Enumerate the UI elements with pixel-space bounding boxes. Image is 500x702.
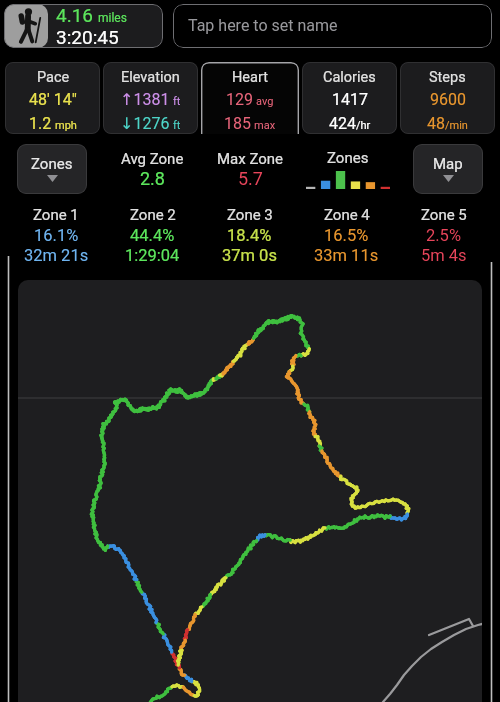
button[interactable]: Map [413,144,483,194]
staticText: 129 [226,91,253,109]
staticText: ↓1276 [120,115,170,133]
staticText: Zone 4 [324,207,370,224]
staticText: Calories [323,69,376,85]
staticText: 16.1% [34,226,79,244]
button[interactable]: Route map [18,280,482,702]
staticText: Elevation [121,69,180,85]
staticText: Zone 2 [130,207,176,224]
staticText: 3:20:45 [56,27,119,48]
staticText: 2.8 [140,169,165,189]
staticText: mph [55,119,77,131]
button[interactable]: Activity type: hiking [4,4,163,48]
button[interactable]: Pace [5,62,100,134]
staticText: ↑1381 [120,91,170,109]
staticText: /min [445,119,468,131]
staticText: Heart [232,69,268,85]
staticText: Map [433,156,463,173]
staticText: Pace [37,69,70,85]
staticText: 424 [329,115,356,133]
staticText: 37m 0s [222,246,277,264]
staticText: Zone 3 [227,207,273,224]
staticText: 5m 4s [421,246,467,264]
staticText: 185 [224,115,251,133]
staticText: 18.4% [227,226,272,244]
staticText: ft [173,119,181,131]
staticText: 9600 [430,91,466,109]
staticText: Avg Zone [121,151,184,168]
button[interactable]: Zone 4 [298,207,395,264]
button[interactable]: Zone 5 [395,207,492,264]
staticText: Zones [327,150,369,167]
staticText: miles [98,11,127,24]
staticText: avg [256,95,274,107]
staticText: Zone 1 [33,207,79,224]
button[interactable]: Elevation [103,62,198,134]
staticText: 48 [427,115,445,133]
staticText: Zones [31,156,73,173]
staticText: 32m 21s [24,246,89,264]
staticText: Zone 5 [421,207,467,224]
staticText: 1:29:04 [125,246,180,264]
staticText: /hr [356,119,371,131]
staticText: 48' 14" [29,91,77,109]
button[interactable]: Steps [400,62,495,134]
staticText: 33m 11s [314,246,379,264]
button[interactable]: Tap here to set name [173,4,492,48]
staticText: 4.16 [56,5,94,26]
other: Activity type: hiking [4,4,48,48]
button[interactable]: Zone 3 [201,207,298,264]
staticText: 44.4% [130,226,175,244]
staticText: Tap here to set name [188,17,338,35]
button[interactable]: Calories [302,62,397,134]
staticText: 5.7 [238,169,263,189]
staticText: Max Zone [217,151,284,168]
staticText: 2.5% [426,226,461,244]
staticText: 16.5% [324,226,369,244]
button[interactable]: Zones [299,150,397,189]
button[interactable]: Zones [17,144,87,194]
staticText: ft [173,95,181,107]
staticText: Steps [429,69,466,85]
button[interactable]: Heart [201,62,299,134]
staticText: max [254,119,276,131]
button[interactable]: Zone 2 [104,207,201,264]
staticText: 1417 [332,91,368,109]
staticText: 1.2 [29,115,52,133]
button[interactable]: Zone 1 [8,207,104,264]
